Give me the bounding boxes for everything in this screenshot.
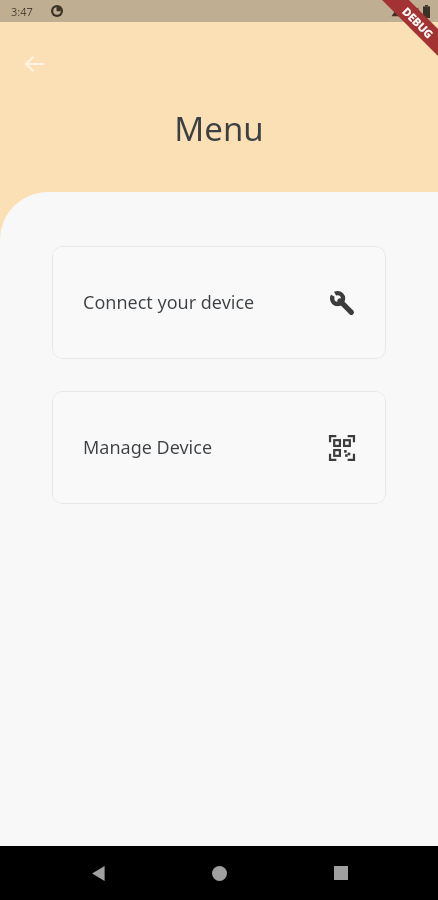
staticText: Menu xyxy=(0,106,438,151)
button[interactable]: Back xyxy=(74,849,122,897)
staticText: Manage Device xyxy=(83,435,329,460)
button[interactable]: Manage Device xyxy=(52,391,386,504)
button[interactable]: Recent apps xyxy=(317,849,365,897)
button[interactable]: Home xyxy=(195,849,243,897)
staticText: Connect your device xyxy=(83,290,329,315)
button[interactable]: Connect your device xyxy=(52,246,386,359)
staticText: DEBUG xyxy=(399,4,437,41)
button[interactable]: Back xyxy=(12,42,56,86)
staticText: 3:47 xyxy=(11,4,33,19)
